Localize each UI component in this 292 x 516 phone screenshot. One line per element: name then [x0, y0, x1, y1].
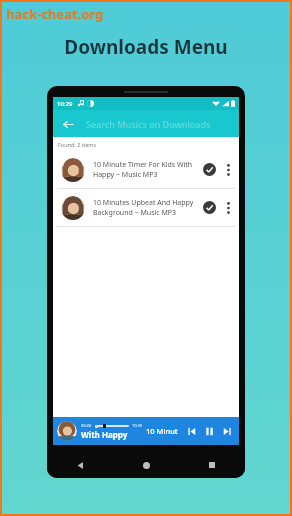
button[interactable]: More options — [223, 162, 233, 178]
button[interactable]: Search Musics on Downloads — [86, 118, 232, 130]
staticText: Happy ~ Music MP3 — [93, 170, 158, 180]
button[interactable]: Back — [60, 116, 76, 132]
staticText: hack-cheat.org — [6, 5, 104, 23]
button[interactable]: Back — [47, 452, 113, 478]
staticText: Downloads Menu — [0, 34, 292, 60]
staticText: 10:35 — [132, 423, 143, 428]
button[interactable]: 10 Minutes Upbeat And Happy — [53, 189, 239, 226]
staticText: 00:00 — [81, 423, 92, 428]
staticText: With Happy — [81, 429, 128, 440]
staticText: Background ~ Music MP3 — [93, 208, 177, 218]
staticText: Found: 2 items — [58, 141, 97, 148]
button[interactable]: Previous — [184, 424, 198, 438]
button[interactable]: 10 Minute Timer For Kids With — [53, 151, 239, 188]
button[interactable]: Home — [113, 452, 179, 478]
button[interactable]: Recent apps — [179, 452, 245, 478]
staticText: 10:29 — [57, 100, 73, 108]
button[interactable]: Next — [220, 424, 234, 438]
button[interactable]: More options — [223, 200, 233, 216]
button[interactable]: Downloaded — [203, 201, 216, 214]
button[interactable]: Downloaded — [203, 163, 216, 176]
staticText: 10 Minutes Upbeat And Happy — [93, 198, 194, 208]
staticText: Search Musics on Downloads — [86, 118, 211, 130]
button[interactable]: Pause — [202, 424, 216, 438]
staticText: 10 Minut — [146, 426, 178, 436]
staticText: 10 Minute Timer For Kids With — [93, 160, 193, 170]
